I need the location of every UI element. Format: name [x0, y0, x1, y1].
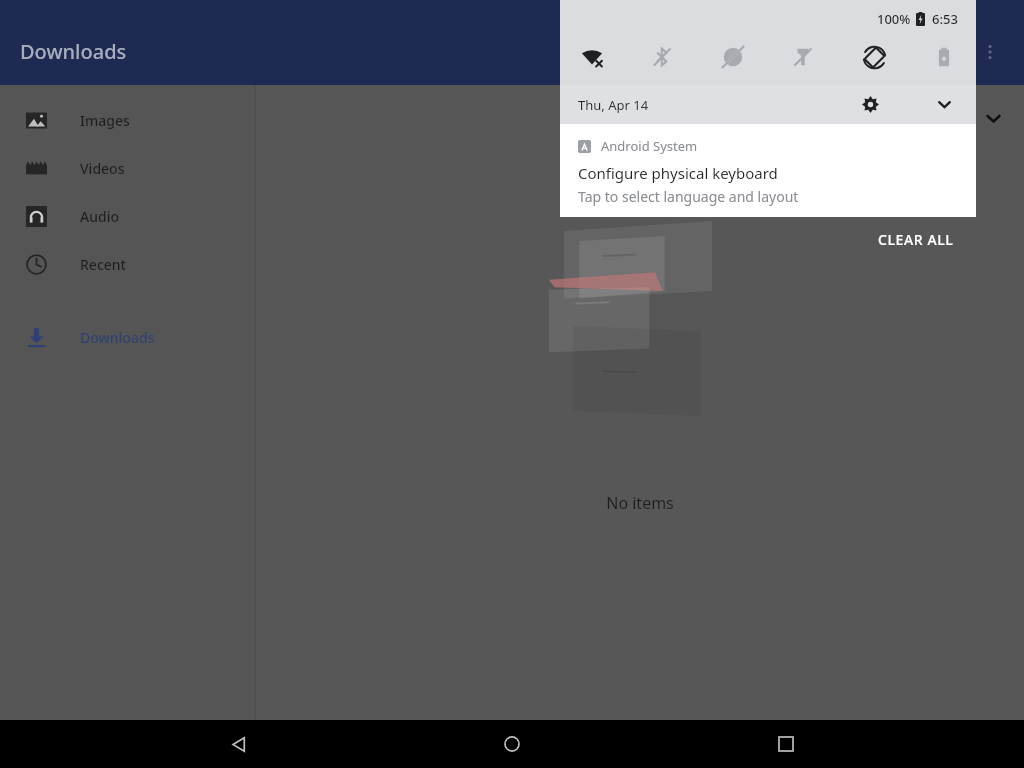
- staticText: CLEAR ALL: [878, 230, 954, 249]
- staticText: Recent: [80, 255, 126, 274]
- button[interactable]: Battery saver: [920, 33, 968, 81]
- button[interactable]: Flashlight: [779, 33, 827, 81]
- staticText: Downloads: [20, 38, 127, 65]
- button[interactable]: More options: [966, 28, 1014, 76]
- button[interactable]: Downloads: [0, 313, 255, 361]
- button[interactable]: Home: [476, 720, 548, 768]
- button[interactable]: Expand: [969, 94, 1017, 142]
- staticText: Configure physical keyboard: [578, 163, 778, 183]
- button[interactable]: Expand quick settings: [924, 85, 964, 124]
- staticText: Audio: [80, 207, 119, 226]
- staticText: 100%: [877, 10, 911, 28]
- button[interactable]: CLEAR ALL: [878, 230, 954, 249]
- button[interactable]: Android System: [560, 124, 976, 217]
- button[interactable]: Recent: [0, 240, 255, 288]
- staticText: Tap to select language and layout: [578, 187, 799, 206]
- staticText: Downloads: [80, 328, 155, 347]
- button[interactable]: Bluetooth: [638, 33, 686, 81]
- staticText: Videos: [80, 159, 125, 178]
- staticText: Android System: [601, 137, 698, 155]
- button[interactable]: Settings: [850, 85, 890, 124]
- staticText: Images: [80, 111, 130, 130]
- button[interactable]: Do not disturb: [709, 33, 757, 81]
- button[interactable]: Recents: [750, 720, 822, 768]
- staticText: No items: [606, 492, 674, 514]
- button[interactable]: Back: [202, 720, 274, 768]
- button[interactable]: Images: [0, 96, 255, 144]
- button[interactable]: Auto rotate: [850, 33, 898, 81]
- button[interactable]: Videos: [0, 144, 255, 192]
- staticText: Thu, Apr 14: [578, 96, 649, 114]
- button[interactable]: Wi-Fi: [568, 33, 616, 81]
- staticText: 6:53: [932, 10, 958, 28]
- button[interactable]: Audio: [0, 192, 255, 240]
